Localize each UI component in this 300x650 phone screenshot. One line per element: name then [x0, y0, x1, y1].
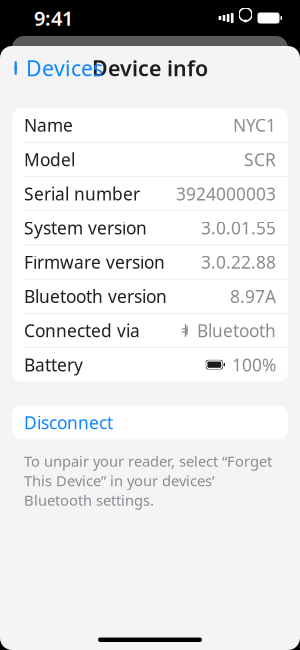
staticText: Serial number [24, 182, 140, 205]
staticText: SCR [244, 148, 276, 171]
staticText: Firmware version [24, 250, 165, 273]
staticText: System version [24, 216, 147, 239]
staticText: To unpair your reader, select “Forget Th… [24, 451, 272, 510]
staticText: 100% [232, 353, 276, 376]
button[interactable]: Devices [0, 48, 113, 88]
staticText: Bluetooth version [24, 285, 167, 308]
staticText: 3.0.01.55 [201, 216, 276, 239]
staticText: Bluetooth [197, 319, 276, 342]
staticText: 3924000003 [176, 182, 276, 205]
staticText: 8.97A [230, 285, 276, 308]
staticText: Devices [26, 54, 103, 82]
staticText: Battery [24, 353, 83, 376]
staticText: Device info [92, 54, 208, 82]
staticText: Connected via [24, 319, 140, 342]
staticText: Name [24, 113, 73, 136]
button[interactable]: Disconnect [0, 405, 300, 439]
staticText: 3.0.22.88 [201, 250, 276, 273]
staticText: NYC1 [233, 113, 276, 136]
staticText: Disconnect [24, 411, 113, 434]
staticText: Model [24, 148, 75, 171]
staticText: 9:41 [34, 5, 73, 31]
